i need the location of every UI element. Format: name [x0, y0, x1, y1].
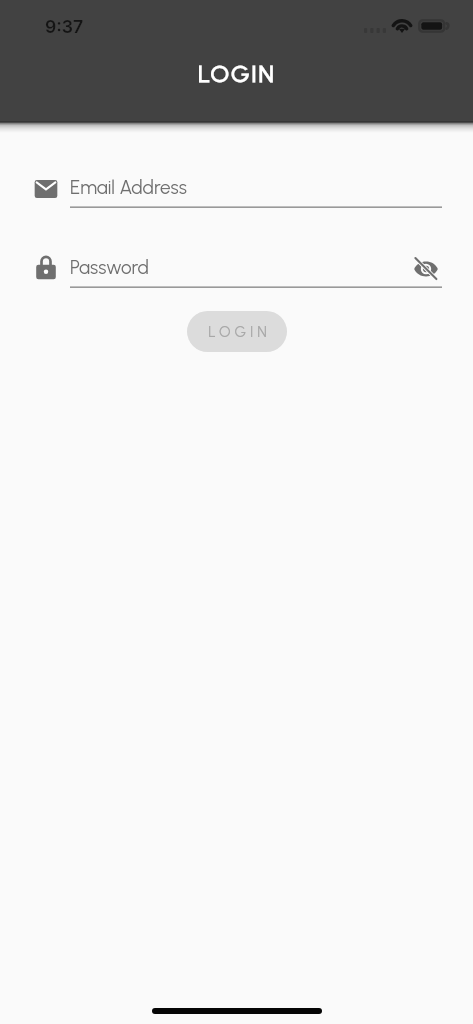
staticText: 9:37 [45, 16, 84, 37]
staticText: LOGIN [208, 323, 271, 341]
staticText: Password [70, 256, 149, 279]
staticText: Email Address [70, 176, 187, 199]
button[interactable]: Show password [408, 251, 444, 287]
button[interactable]: LOGIN [187, 311, 287, 352]
staticText: LOGIN [198, 59, 276, 88]
